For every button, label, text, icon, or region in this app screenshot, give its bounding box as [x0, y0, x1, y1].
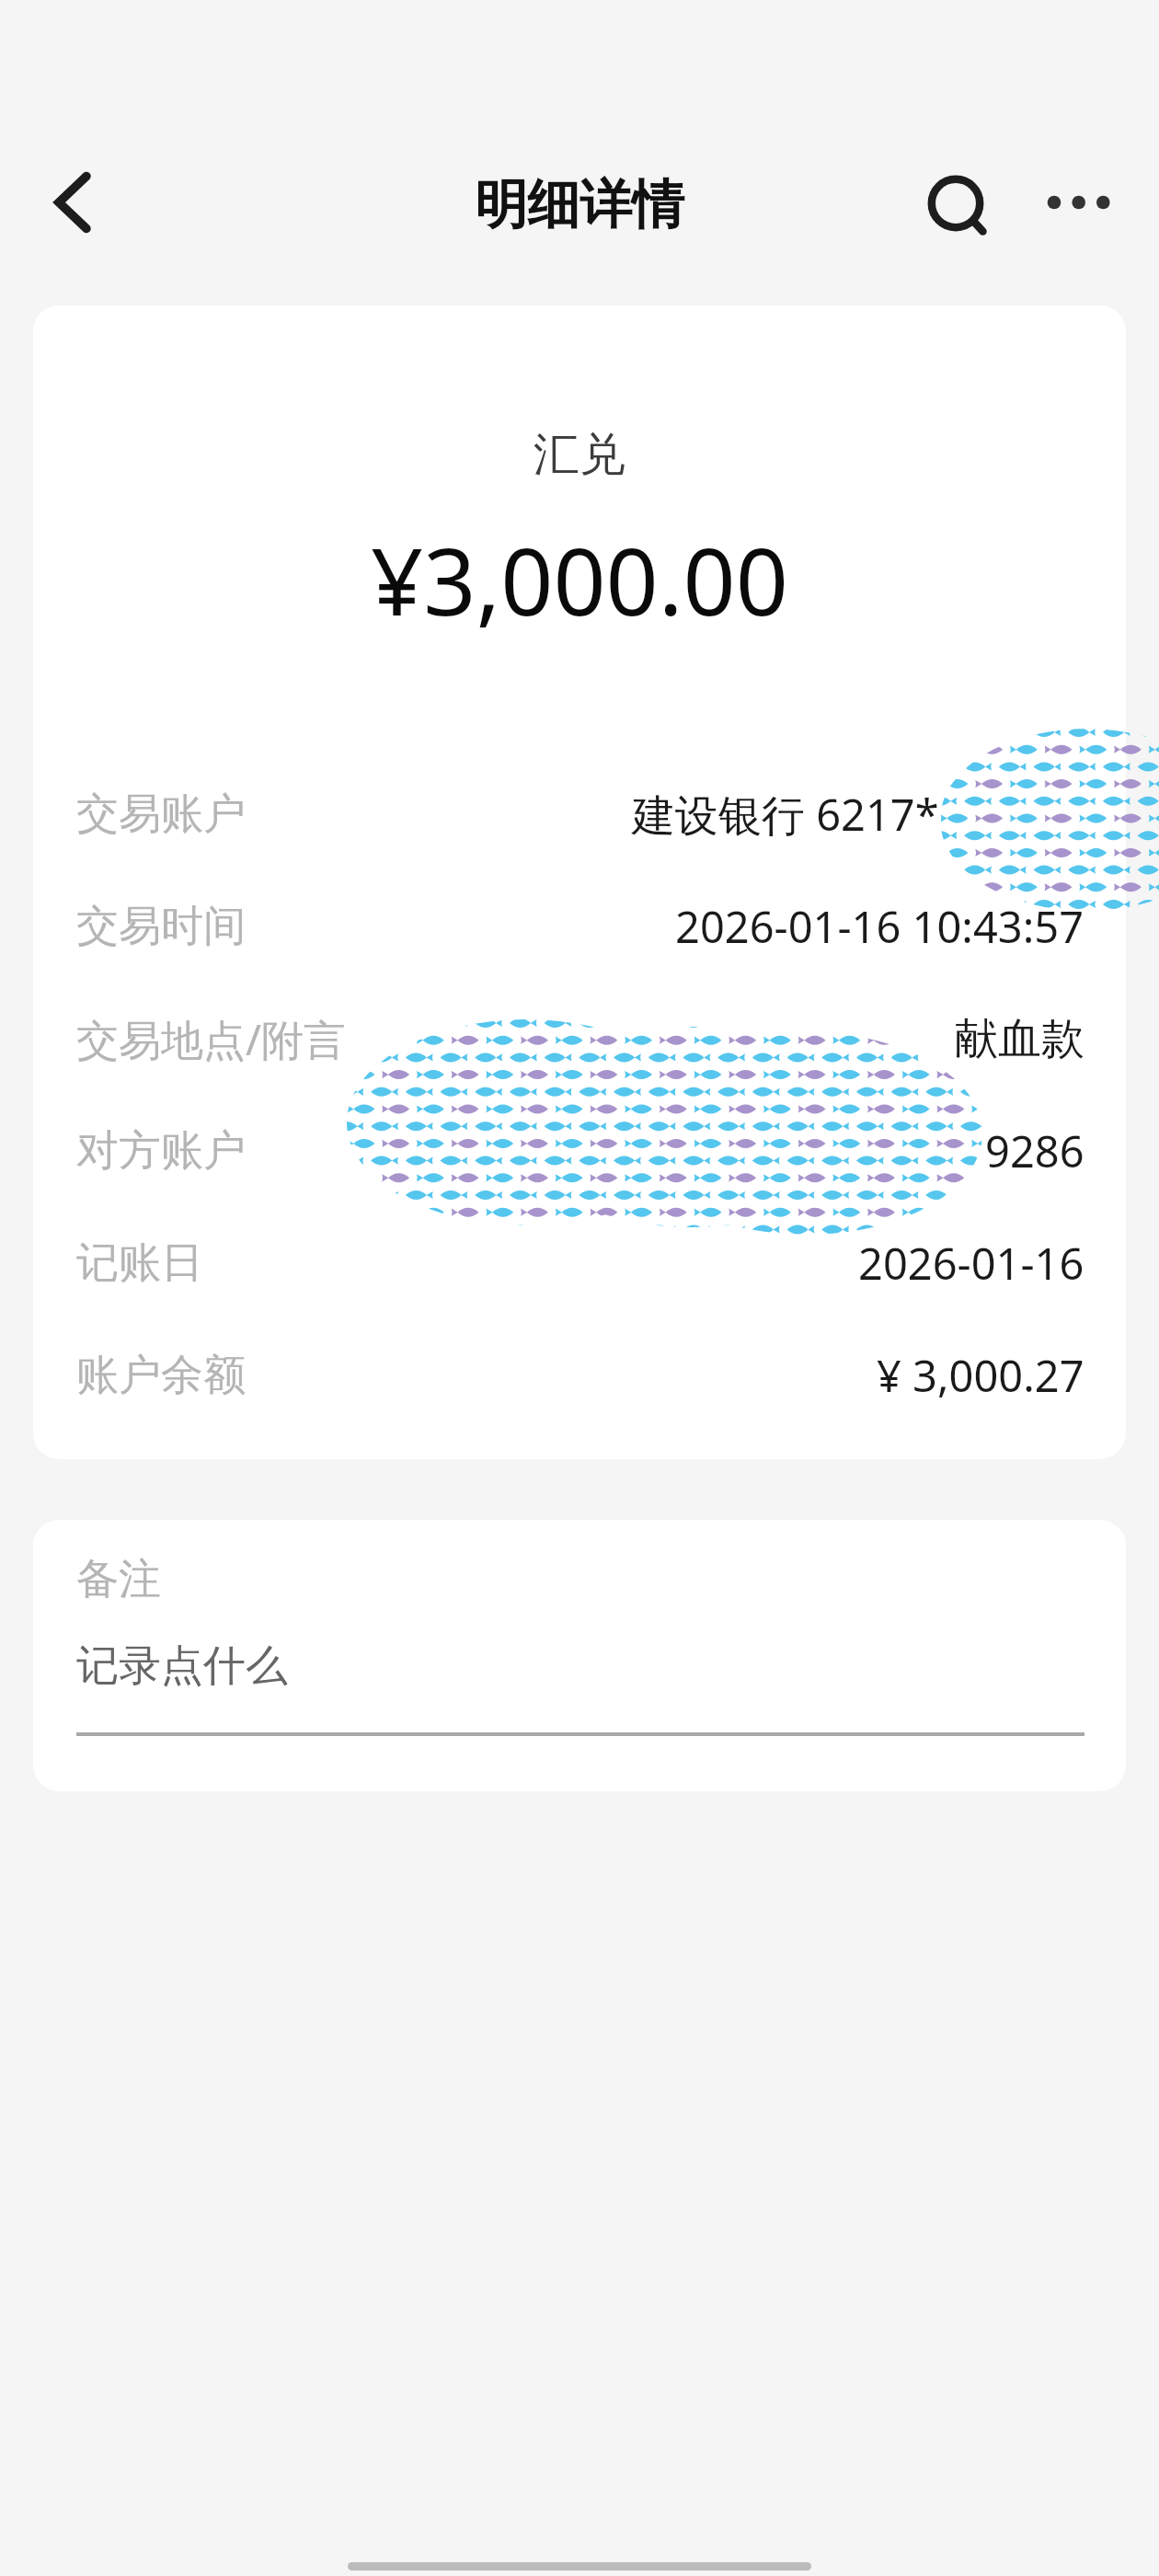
- button[interactable]: Search: [901, 148, 1011, 259]
- button[interactable]: 备注: [33, 1520, 1126, 1736]
- staticText: 9286: [985, 1121, 1084, 1180]
- staticText: 备注: [76, 1553, 161, 1606]
- staticText: 明细详情: [475, 172, 684, 238]
- staticText: 汇兑: [33, 426, 1126, 484]
- staticText: 记账日: [76, 1236, 203, 1290]
- button[interactable]: Back: [17, 147, 128, 258]
- button[interactable]: More options: [1023, 147, 1133, 258]
- staticText: 交易地点/附言: [76, 1010, 347, 1068]
- staticText: 建设银行 6217*: [632, 785, 939, 844]
- staticText: 对方账户: [76, 1124, 246, 1178]
- staticText: 2026-01-16 10:43:57: [675, 897, 1084, 956]
- staticText: 交易时间: [76, 900, 246, 953]
- staticText: 交易账户: [76, 788, 246, 841]
- staticText: 账户余额: [76, 1349, 246, 1402]
- staticText: 2026-01-16: [858, 1234, 1084, 1293]
- staticText: 献血款: [955, 1012, 1084, 1066]
- staticText: ¥3,000.00: [33, 517, 1126, 642]
- staticText: 记录点什么: [76, 1639, 288, 1693]
- staticText: ¥ 3,000.27: [877, 1346, 1084, 1405]
